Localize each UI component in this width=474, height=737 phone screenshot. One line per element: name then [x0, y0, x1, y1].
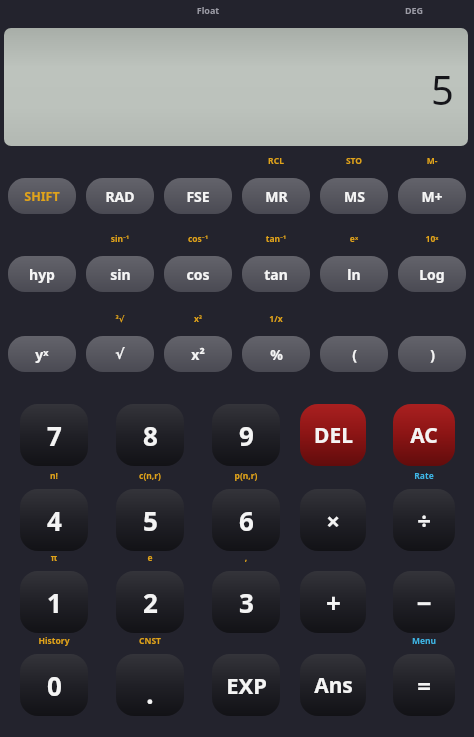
staticText: History — [0, 635, 114, 649]
staticText: SHIFT — [24, 188, 60, 205]
staticText: 10ˣ — [372, 233, 474, 247]
staticText: MR — [265, 187, 288, 206]
button[interactable]: = — [393, 654, 455, 716]
staticText: % — [270, 345, 283, 364]
button[interactable]: + — [300, 571, 366, 633]
button[interactable]: Ans — [300, 654, 366, 716]
staticText: 2 — [143, 585, 158, 620]
button[interactable]: Log — [398, 256, 466, 292]
button[interactable]: cos — [164, 256, 232, 292]
staticText: DEL — [314, 421, 353, 450]
staticText: x² — [191, 345, 205, 364]
staticText: CNST — [90, 635, 210, 649]
button[interactable]: √ — [86, 336, 154, 372]
button[interactable]: sin — [86, 256, 154, 292]
staticText: Ans — [314, 671, 353, 700]
button[interactable]: RAD — [86, 178, 154, 214]
staticText: Rate — [364, 470, 474, 484]
button[interactable]: 5 — [116, 489, 184, 551]
staticText: STO — [294, 155, 414, 169]
button[interactable]: AC — [393, 404, 455, 466]
staticText: c(n,r) — [90, 470, 210, 484]
staticText: 1 — [47, 585, 62, 620]
button[interactable]: M+ — [398, 178, 466, 214]
staticText: 6 — [239, 503, 254, 538]
staticText: − — [416, 585, 432, 620]
staticText: 9 — [239, 418, 254, 453]
button[interactable]: MR — [242, 178, 310, 214]
staticText: 5 — [431, 62, 454, 116]
button[interactable]: hyp — [8, 256, 76, 292]
staticText: √ — [115, 346, 125, 362]
staticText: RCL — [216, 155, 336, 169]
staticText: 5 — [143, 503, 158, 538]
button[interactable]: yˣ — [8, 336, 76, 372]
staticText: Log — [419, 265, 445, 284]
button[interactable]: % — [242, 336, 310, 372]
staticText: yˣ — [35, 345, 49, 364]
button[interactable]: × — [300, 489, 366, 551]
staticText: ln — [347, 265, 361, 284]
staticText: . — [146, 676, 154, 711]
staticText: 8 — [143, 418, 158, 453]
staticText: EXP — [226, 670, 267, 700]
staticText: tan — [264, 265, 288, 284]
staticText: cos⁻¹ — [138, 233, 258, 247]
staticText: , — [186, 552, 306, 566]
staticText: 0 — [47, 668, 62, 703]
button[interactable]: 0 — [20, 654, 88, 716]
button[interactable]: ln — [320, 256, 388, 292]
staticText: 3 — [239, 585, 254, 620]
staticText: 4 — [47, 503, 62, 538]
button[interactable]: . — [116, 654, 184, 716]
staticText: ³√ — [60, 313, 180, 327]
button[interactable]: x² — [164, 336, 232, 372]
staticText: + — [326, 585, 341, 620]
staticText: DEG — [354, 4, 474, 18]
staticText: FSE — [186, 187, 210, 206]
staticText: 7 — [47, 418, 62, 453]
staticText: Float — [148, 4, 268, 18]
staticText: 1/x — [216, 313, 336, 327]
staticText: ÷ — [417, 504, 431, 537]
staticText: Menu — [364, 635, 474, 649]
staticText: ) — [430, 345, 435, 364]
staticText: MS — [344, 187, 365, 206]
button[interactable]: 7 — [20, 404, 88, 466]
staticText: eˣ — [294, 233, 414, 247]
staticText: M- — [372, 155, 474, 169]
staticText: ( — [352, 345, 357, 364]
staticText: tan⁻¹ — [216, 233, 336, 247]
button[interactable]: 1 — [20, 571, 88, 633]
staticText: e — [90, 552, 210, 566]
button[interactable]: 6 — [212, 489, 280, 551]
button[interactable]: ) — [398, 336, 466, 372]
staticText: n! — [0, 470, 114, 484]
staticText: M+ — [421, 187, 443, 206]
staticText: = — [417, 669, 431, 702]
staticText: hyp — [29, 265, 55, 284]
staticText: x³ — [138, 313, 258, 327]
button[interactable]: ÷ — [393, 489, 455, 551]
staticText: p(n,r) — [186, 470, 306, 484]
button[interactable]: DEL — [300, 404, 366, 466]
staticText: sin⁻¹ — [60, 233, 180, 247]
button[interactable]: ( — [320, 336, 388, 372]
button[interactable]: SHIFT — [8, 178, 76, 214]
button[interactable]: 8 — [116, 404, 184, 466]
button[interactable]: 9 — [212, 404, 280, 466]
staticText: AC — [410, 421, 438, 450]
staticText: cos — [186, 265, 210, 284]
button[interactable]: 3 — [212, 571, 280, 633]
button[interactable]: tan — [242, 256, 310, 292]
staticText: RAD — [105, 187, 135, 206]
button[interactable]: EXP — [212, 654, 280, 716]
button[interactable]: 4 — [20, 489, 88, 551]
staticText: π — [0, 552, 114, 566]
button[interactable]: − — [393, 571, 455, 633]
staticText: sin — [110, 265, 131, 284]
button[interactable]: 2 — [116, 571, 184, 633]
button[interactable]: FSE — [164, 178, 232, 214]
staticText: × — [326, 504, 340, 537]
button[interactable]: MS — [320, 178, 388, 214]
